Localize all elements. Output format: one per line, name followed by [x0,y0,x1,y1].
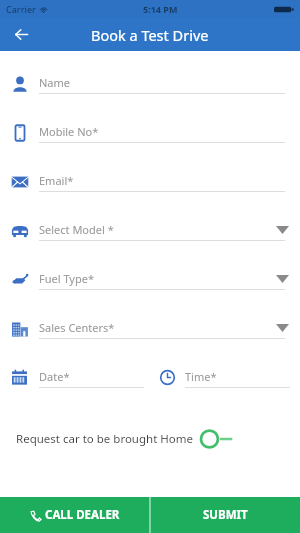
staticText: Select Model * [39,222,114,237]
staticText: Date* [39,369,70,384]
button[interactable]: SUBMIT [151,497,300,533]
button[interactable]: Request car to be brought Home [16,424,300,454]
button[interactable]: CALL DEALER [0,497,149,533]
staticText: Email* [39,173,74,188]
staticText: Name [39,75,71,90]
staticText: Carrier [6,3,36,15]
staticText: CALL DEALER [45,507,120,523]
staticText: Time* [185,369,217,384]
button[interactable]: Select Model * [0,208,300,257]
button[interactable]: Fuel Type* [0,257,300,306]
button[interactable]: Name [0,61,300,110]
button[interactable]: Time* [155,355,295,404]
staticText: Fuel Type* [39,271,94,286]
button[interactable]: Email* [0,159,300,208]
staticText: SUBMIT [203,507,248,523]
staticText: Mobile No* [39,124,99,139]
button[interactable]: Back [0,18,42,51]
staticText: 5:14 PM [143,3,178,15]
staticText: Sales Centers* [39,320,115,335]
button[interactable]: Date* [7,355,147,404]
staticText: Request car to be brought Home [16,431,194,447]
button[interactable]: Sales Centers* [0,306,300,355]
button[interactable]: Mobile No* [0,110,300,159]
staticText: Book a Test Drive [91,25,209,45]
